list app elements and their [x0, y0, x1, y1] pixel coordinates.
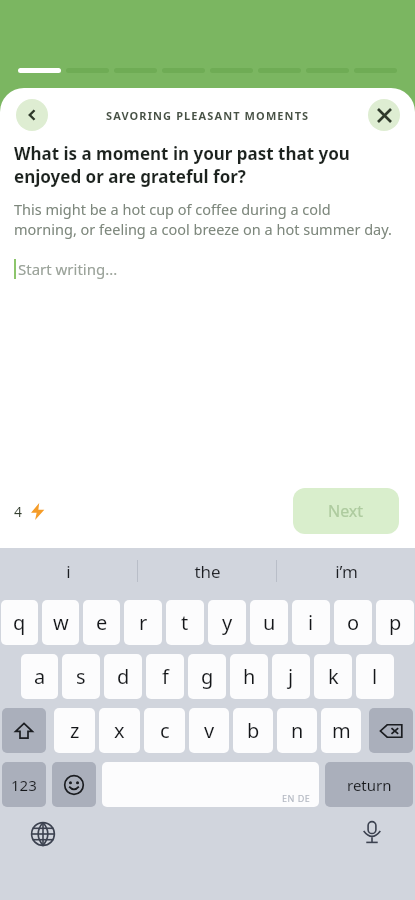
button[interactable]: f	[146, 654, 184, 699]
staticText: z	[70, 717, 80, 744]
button[interactable]: i	[292, 600, 330, 645]
staticText: EN DE	[282, 792, 311, 804]
staticText: p	[389, 609, 402, 636]
button[interactable]: n	[277, 708, 317, 753]
button[interactable]: p	[376, 600, 414, 645]
staticText: q	[13, 609, 26, 636]
button[interactable]: a	[21, 654, 58, 699]
staticText: return	[347, 775, 392, 795]
button[interactable]: d	[104, 654, 142, 699]
button[interactable]: 123	[2, 762, 46, 807]
staticText: f	[162, 663, 169, 690]
staticText: m	[332, 717, 351, 744]
button[interactable]: Close	[368, 99, 400, 131]
button[interactable]: l	[356, 654, 394, 699]
staticText: b	[247, 717, 260, 744]
staticText: k	[328, 663, 339, 690]
button[interactable]: Backspace	[369, 708, 413, 753]
staticText: a	[34, 663, 46, 690]
staticText: x	[114, 717, 125, 744]
staticText: i	[66, 560, 71, 583]
staticText: s	[76, 663, 86, 690]
button[interactable]: g	[188, 654, 226, 699]
staticText: the	[194, 560, 221, 583]
button[interactable]: the	[138, 548, 276, 594]
button[interactable]: Space	[102, 762, 319, 807]
button[interactable]: i’m	[277, 548, 415, 594]
button[interactable]: w	[42, 600, 79, 645]
staticText: u	[263, 609, 276, 636]
staticText: y	[222, 609, 233, 636]
staticText: r	[139, 609, 148, 636]
staticText: c	[160, 717, 170, 744]
button[interactable]: Voice input	[357, 817, 387, 847]
button[interactable]: i	[0, 548, 137, 594]
button[interactable]: return	[325, 762, 413, 807]
button[interactable]: h	[230, 654, 268, 699]
button[interactable]: z	[54, 708, 95, 753]
button[interactable]: s	[62, 654, 100, 699]
button[interactable]: o	[334, 600, 372, 645]
staticText: SAVORING PLEASANT MOMENTS	[106, 108, 310, 123]
staticText: e	[96, 609, 108, 636]
staticText: h	[243, 663, 256, 690]
staticText: What is a moment in your past that you e…	[14, 142, 397, 188]
button[interactable]: u	[250, 600, 288, 645]
button[interactable]: y	[208, 600, 246, 645]
button[interactable]: Change language	[28, 819, 58, 849]
staticText: Next	[328, 500, 364, 522]
staticText: i	[308, 609, 314, 636]
button[interactable]: Shift	[2, 708, 46, 753]
button[interactable]: v	[189, 708, 229, 753]
button[interactable]: e	[83, 600, 120, 645]
button[interactable]: j	[272, 654, 310, 699]
staticText: d	[117, 663, 130, 690]
button[interactable]: t	[166, 600, 204, 645]
button[interactable]: Start writing...	[14, 255, 415, 283]
staticText: l	[372, 663, 378, 690]
staticText: This might be a hot cup of coffee during…	[14, 199, 393, 239]
staticText: i’m	[335, 560, 358, 583]
staticText: 123	[11, 775, 37, 795]
button[interactable]: q	[1, 600, 38, 645]
button[interactable]: Next	[293, 488, 399, 534]
button[interactable]: m	[321, 708, 361, 753]
staticText: j	[288, 663, 294, 690]
button[interactable]: Back	[16, 99, 48, 131]
button[interactable]: b	[233, 708, 273, 753]
staticText: t	[181, 609, 189, 636]
button[interactable]: k	[314, 654, 352, 699]
staticText: g	[201, 663, 214, 690]
staticText: v	[204, 717, 215, 744]
staticText: w	[53, 609, 69, 636]
staticText: o	[347, 609, 360, 636]
button[interactable]: r	[124, 600, 162, 645]
button[interactable]: Emoji	[52, 762, 96, 807]
button[interactable]: c	[144, 708, 185, 753]
staticText: Start writing...	[18, 259, 118, 279]
button[interactable]: x	[99, 708, 140, 753]
staticText: n	[291, 717, 304, 744]
staticText: 4	[14, 502, 23, 521]
